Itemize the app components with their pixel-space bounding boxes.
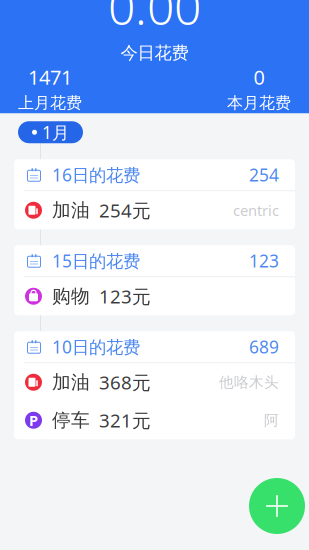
staticText: 16日的花费 [52, 163, 140, 186]
button[interactable]: Add expense [249, 478, 305, 534]
staticText: 10日的花费 [52, 335, 140, 358]
staticText: 1471 [28, 64, 72, 90]
staticText: 689 [249, 335, 279, 358]
button[interactable]: 1月 [18, 121, 83, 143]
staticText: 上月花费 [18, 93, 82, 113]
staticText: 购物 [52, 285, 90, 308]
staticText: 368元 [99, 370, 151, 395]
staticText: 254元 [99, 198, 151, 223]
staticText: 本月花费 [227, 93, 291, 113]
staticText: 停车 [52, 409, 90, 432]
staticText: 123 [249, 249, 279, 272]
staticText: 阿 [264, 411, 279, 429]
staticText: centric [233, 200, 279, 220]
staticText: 他咯木头 [219, 373, 279, 391]
staticText: 321元 [99, 408, 151, 433]
staticText: 123元 [99, 284, 151, 309]
staticText: 加油 [52, 371, 90, 394]
staticText: 加油 [52, 199, 90, 222]
staticText: P [29, 410, 38, 430]
staticText: 15日的花费 [52, 249, 140, 272]
staticText: 今日花费 [120, 42, 188, 64]
staticText: 1月 [42, 121, 69, 144]
staticText: 0.00 [108, 0, 201, 38]
staticText: 0 [253, 64, 264, 90]
staticText: 254 [249, 163, 279, 186]
